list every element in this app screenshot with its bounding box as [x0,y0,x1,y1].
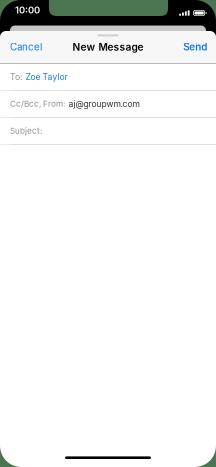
staticText: Send [183,41,207,53]
button[interactable]: Cc/Bcc, From: [0,91,216,118]
staticText: Zoe Taylor [26,72,68,82]
staticText: 10:00 [15,4,40,16]
button[interactable]: To: [0,64,216,91]
staticText: To: [10,72,22,82]
button[interactable]: Send [163,31,216,63]
button[interactable]: Cancel [0,31,62,63]
staticText: New Message [72,41,143,53]
button[interactable]: Subject: [0,118,216,145]
staticText: Subject: [10,126,42,136]
staticText: Cc/Bcc, From: [10,99,65,109]
staticText: aj@groupwm.com [69,99,140,109]
staticText: Cancel [10,41,42,53]
